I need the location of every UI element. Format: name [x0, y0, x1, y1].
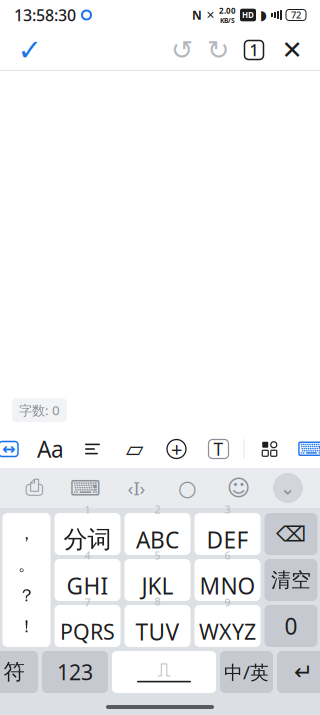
- button[interactable]: Undo: [164, 30, 200, 70]
- staticText: ‹I›: [127, 476, 145, 500]
- button[interactable]: Indent: [0, 431, 25, 467]
- staticText: ↵: [294, 659, 313, 685]
- button[interactable]: 8: [124, 605, 190, 647]
- staticText: ⌫: [276, 522, 306, 546]
- button[interactable]: Insert image: [117, 431, 151, 467]
- staticText: ▱: [126, 436, 143, 462]
- staticText: ✕: [206, 9, 215, 21]
- staticText: T: [213, 437, 223, 460]
- button[interactable]: Redo: [200, 30, 236, 70]
- button[interactable]: 4: [54, 559, 120, 601]
- staticText: ○: [178, 476, 197, 500]
- button[interactable]: Close: [272, 30, 312, 70]
- staticText: DEF: [206, 524, 248, 555]
- staticText: 0: [284, 611, 297, 641]
- staticText: +: [171, 436, 182, 462]
- staticText: 9: [224, 595, 230, 609]
- staticText: Aa: [37, 434, 64, 464]
- button[interactable]: 0: [264, 605, 317, 647]
- staticText: N: [192, 7, 202, 23]
- staticText: 3: [224, 502, 230, 517]
- button[interactable]: ↵: [277, 651, 320, 693]
- staticText: 2.00: [219, 5, 236, 16]
- staticText: 2: [154, 502, 160, 517]
- staticText: JKL: [141, 570, 173, 601]
- button[interactable]: 符: [0, 651, 38, 693]
- staticText: ↻: [207, 35, 229, 65]
- staticText: ⌨: [297, 438, 320, 460]
- button[interactable]: Font: [33, 431, 67, 467]
- button[interactable]: 6: [194, 559, 260, 601]
- button[interactable]: 3: [194, 513, 260, 555]
- staticText: PQRS: [60, 617, 115, 646]
- staticText: ✓: [17, 33, 42, 67]
- button[interactable]: 1: [54, 513, 120, 555]
- staticText: 6: [224, 548, 230, 563]
- staticText: ↔: [2, 440, 15, 458]
- staticText: MNO: [199, 570, 255, 601]
- staticText: 中/英: [224, 660, 269, 684]
- button[interactable]: Emoji: [222, 473, 256, 503]
- button[interactable]: 中/英: [220, 651, 273, 693]
- staticText: WXYZ: [199, 617, 256, 646]
- staticText: 符: [3, 659, 24, 685]
- staticText: ✕: [281, 36, 302, 64]
- staticText: 。: [18, 554, 35, 575]
- button[interactable]: Move cursor: [119, 473, 153, 503]
- button[interactable]: Scan text: [201, 431, 235, 467]
- button[interactable]: Done: [8, 30, 52, 70]
- staticText: ，: [18, 523, 35, 544]
- button[interactable]: 2: [124, 513, 190, 555]
- staticText: ⎙: [25, 477, 43, 499]
- staticText: KB/S: [220, 16, 235, 25]
- button[interactable]: Search: [171, 473, 205, 503]
- staticText: 5: [154, 548, 160, 563]
- button[interactable]: 9: [194, 605, 260, 647]
- staticText: ⌨: [70, 476, 101, 500]
- button[interactable]: Hide keyboard: [273, 473, 303, 503]
- button[interactable]: Keyboard: [294, 431, 320, 467]
- button[interactable]: 7: [54, 605, 120, 647]
- button[interactable]: Keyboard layout: [68, 473, 102, 503]
- staticText: 字数: 0: [19, 401, 60, 419]
- staticText: 1: [84, 503, 90, 517]
- button[interactable]: Page 1: [236, 30, 272, 70]
- staticText: ⎍: [157, 662, 170, 680]
- staticText: 7: [84, 595, 90, 609]
- staticText: 72: [291, 9, 301, 21]
- button[interactable]: Space: [112, 651, 216, 693]
- staticText: 123: [57, 658, 93, 686]
- staticText: ◗: [260, 7, 267, 22]
- staticText: ？: [18, 585, 35, 606]
- button[interactable]: Alignment: [75, 431, 109, 467]
- button[interactable]: ⌫: [264, 513, 317, 555]
- staticText: HD: [242, 10, 254, 20]
- button[interactable]: 5: [124, 559, 190, 601]
- staticText: 13:58:30: [14, 4, 76, 26]
- button[interactable]: Clipboard: [17, 473, 51, 503]
- staticText: TUV: [135, 616, 179, 647]
- staticText: ！: [18, 616, 35, 637]
- button[interactable]: 123: [42, 651, 108, 693]
- staticText: 4: [84, 548, 90, 563]
- staticText: GHI: [66, 570, 108, 601]
- staticText: ↺: [171, 35, 193, 65]
- button[interactable]: More tools: [252, 431, 286, 467]
- staticText: 1: [249, 39, 258, 61]
- staticText: ☺: [227, 475, 251, 501]
- staticText: ⌄: [280, 477, 296, 499]
- staticText: 分词: [63, 525, 111, 554]
- staticText: 清空: [271, 568, 311, 592]
- staticText: ABC: [136, 524, 179, 555]
- button[interactable]: Punctuation: [2, 513, 50, 647]
- button[interactable]: 清空: [264, 559, 317, 601]
- staticText: 8: [154, 594, 160, 609]
- button[interactable]: Add: [159, 431, 193, 467]
